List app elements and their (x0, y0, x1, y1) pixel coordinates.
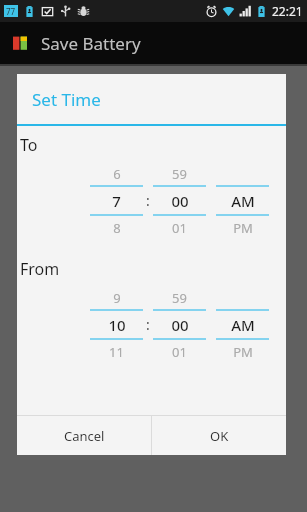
staticText: : (146, 191, 150, 210)
button[interactable]: 9 (90, 286, 143, 363)
button[interactable]: 6 (90, 162, 143, 239)
staticText: 6 (113, 165, 121, 183)
staticText: 01 (172, 343, 187, 361)
staticText: Set Time (32, 88, 101, 111)
staticText: Cancel (64, 427, 105, 445)
button[interactable]: AM (216, 286, 269, 363)
staticText: AM (231, 191, 255, 211)
staticText: 10 (108, 315, 126, 335)
staticText: 7 (112, 191, 121, 211)
staticText: OK (210, 427, 229, 445)
button[interactable]: 59 (153, 162, 206, 239)
staticText: AM (231, 315, 255, 335)
staticText: 59 (172, 289, 187, 307)
staticText: PM (233, 219, 253, 237)
staticText: 22:21 (272, 3, 303, 19)
staticText: Set Mode (22, 70, 89, 90)
staticText: : (146, 315, 150, 334)
button[interactable]: Cancel (17, 416, 151, 455)
staticText: 00 (171, 191, 189, 211)
staticText: 8 (113, 219, 121, 237)
button[interactable]: AM (216, 162, 269, 239)
staticText: 77 (6, 6, 16, 17)
button[interactable]: Save Battery app icon (0, 22, 307, 64)
staticText: 01 (172, 219, 187, 237)
staticText: To (20, 134, 38, 156)
staticText: From (20, 258, 60, 280)
staticText: PM (233, 343, 253, 361)
other: Save Battery app icon (11, 33, 31, 53)
staticText: 11 (109, 343, 124, 361)
staticText: 9 (113, 289, 121, 307)
button[interactable]: OK (152, 416, 286, 455)
button[interactable]: 59 (153, 286, 206, 363)
staticText: 59 (172, 165, 187, 183)
staticText: 00 (171, 315, 189, 335)
staticText: Save Battery (41, 32, 141, 55)
